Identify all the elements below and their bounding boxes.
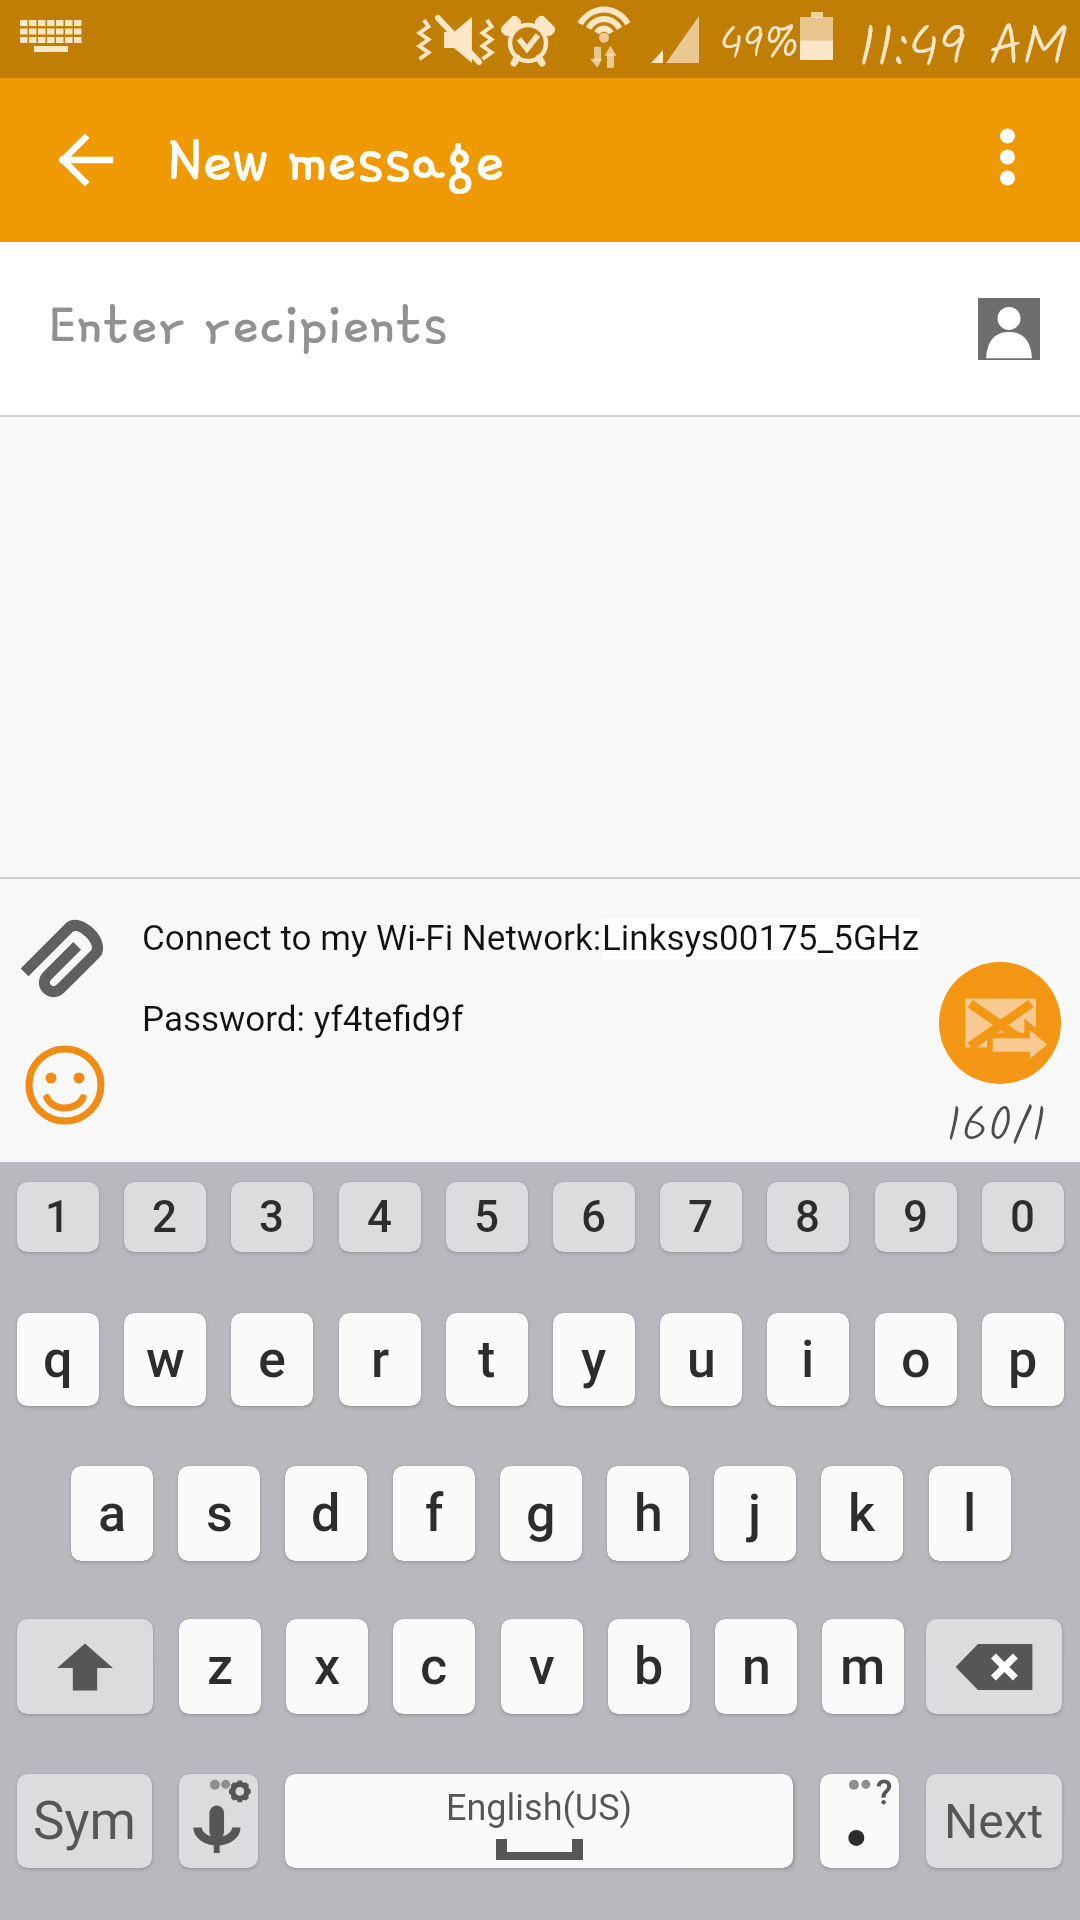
button[interactable]: t (446, 1313, 528, 1406)
button[interactable]: e (231, 1313, 313, 1406)
button[interactable]: q (17, 1313, 99, 1406)
button[interactable]: 3 (231, 1182, 313, 1252)
staticText: n (742, 1636, 771, 1697)
button[interactable]: 1 (17, 1182, 99, 1252)
staticText: ? (876, 1774, 893, 1812)
button[interactable]: Add recipient from contacts (978, 298, 1040, 360)
staticText: m (840, 1636, 886, 1697)
staticText: e (258, 1329, 286, 1390)
staticText: k (848, 1483, 876, 1544)
button[interactable]: Send message (939, 962, 1061, 1084)
button[interactable]: Next (926, 1774, 1062, 1868)
staticText: f (425, 1483, 444, 1544)
staticText: Enter recipients (49, 290, 448, 355)
staticText: x (314, 1636, 341, 1697)
button[interactable]: Back (31, 105, 141, 215)
button[interactable]: y (553, 1313, 635, 1406)
button[interactable]: More options (958, 107, 1058, 207)
staticText: Connect to my Wi-Fi Network: (142, 918, 602, 959)
button[interactable]: 2 (124, 1182, 206, 1252)
staticText: 2 (152, 1191, 178, 1243)
staticText: o (901, 1329, 931, 1390)
button[interactable]: h (607, 1466, 689, 1561)
button[interactable]: Backspace (926, 1619, 1062, 1714)
button[interactable]: r (339, 1313, 421, 1406)
button[interactable]: 8 (767, 1182, 849, 1252)
staticText: English(US) (446, 1787, 633, 1829)
button[interactable]: 5 (446, 1182, 528, 1252)
staticText: 160/1 (946, 1089, 1047, 1166)
staticText: 6 (581, 1191, 607, 1243)
button[interactable]: k (821, 1466, 903, 1561)
button[interactable]: 6 (553, 1182, 635, 1252)
staticText: i (801, 1329, 815, 1390)
staticText: q (43, 1329, 73, 1390)
staticText: 1 (45, 1191, 71, 1243)
staticText: 49% (719, 11, 800, 80)
staticText: 5 (474, 1191, 500, 1243)
staticText: t (478, 1329, 496, 1390)
button[interactable]: Symbols (17, 1774, 152, 1868)
button[interactable]: 7 (660, 1182, 742, 1252)
staticText: j (748, 1483, 762, 1544)
staticText: 9 (903, 1191, 929, 1243)
button[interactable]: Space (285, 1774, 793, 1868)
button[interactable]: b (608, 1619, 690, 1714)
staticText: s (206, 1483, 233, 1544)
staticText: Password: yf4tefid9f (142, 999, 464, 1040)
staticText: y (581, 1329, 607, 1390)
button[interactable]: 0 (982, 1182, 1064, 1252)
button[interactable]: d (285, 1466, 367, 1561)
button[interactable]: Emoji (17, 1037, 113, 1133)
button[interactable]: u (660, 1313, 742, 1406)
button[interactable]: 9 (875, 1182, 957, 1252)
staticText: 8 (795, 1191, 821, 1243)
staticText: a (98, 1483, 127, 1544)
button[interactable]: Voice input (179, 1774, 258, 1868)
staticText: p (1008, 1329, 1038, 1390)
button[interactable]: w (124, 1313, 206, 1406)
staticText: Next (944, 1793, 1044, 1849)
button[interactable]: a (71, 1466, 153, 1561)
button[interactable]: c (393, 1619, 475, 1714)
button[interactable]: f (393, 1466, 475, 1561)
button[interactable]: z (179, 1619, 261, 1714)
staticText: c (420, 1636, 448, 1697)
staticText: w (146, 1329, 185, 1390)
button[interactable]: g (500, 1466, 582, 1561)
staticText: d (311, 1483, 341, 1544)
staticText: Linksys00175_5GHz (602, 918, 920, 959)
button[interactable]: j (714, 1466, 796, 1561)
staticText: 7 (688, 1191, 714, 1243)
staticText: 11:49 AM (858, 4, 1067, 82)
staticText: u (687, 1329, 716, 1390)
button[interactable]: Enter recipients (0, 242, 1080, 417)
button[interactable]: Period (820, 1774, 899, 1868)
staticText: b (634, 1636, 664, 1697)
button[interactable]: m (822, 1619, 904, 1714)
button[interactable]: Shift (17, 1619, 153, 1714)
button[interactable]: l (929, 1466, 1011, 1561)
staticText: h (634, 1483, 663, 1544)
staticText: z (207, 1636, 234, 1697)
button[interactable]: Attach (22, 915, 108, 1001)
staticText: g (526, 1483, 556, 1544)
button[interactable]: p (982, 1313, 1064, 1406)
button[interactable]: o (875, 1313, 957, 1406)
button[interactable]: i (767, 1313, 849, 1406)
staticText: New message (167, 123, 505, 195)
staticText: r (371, 1329, 390, 1390)
staticText: v (529, 1636, 555, 1697)
button[interactable]: 4 (339, 1182, 421, 1252)
button[interactable]: x (286, 1619, 368, 1714)
button[interactable]: v (501, 1619, 583, 1714)
staticText: 4 (367, 1191, 393, 1243)
staticText: Sym (33, 1790, 137, 1852)
button[interactable]: s (178, 1466, 260, 1561)
staticText: 3 (259, 1191, 285, 1243)
button[interactable]: n (715, 1619, 797, 1714)
staticText: l (963, 1483, 977, 1544)
staticText: 0 (1010, 1191, 1036, 1243)
